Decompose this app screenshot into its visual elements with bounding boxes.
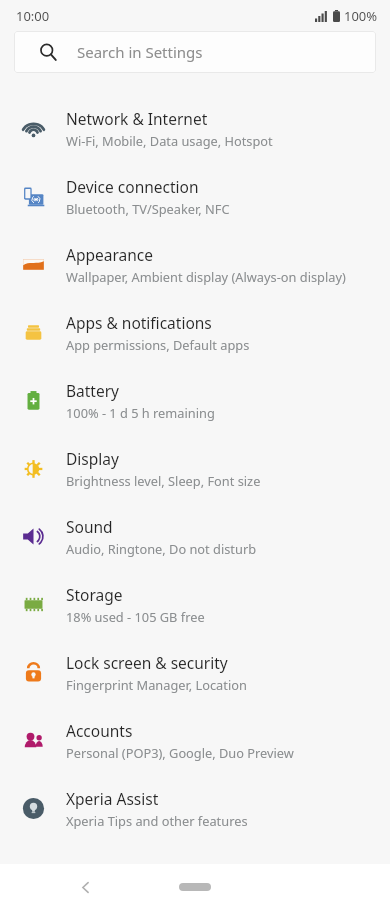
staticText: 100% <box>344 7 378 25</box>
staticText: Sound <box>66 516 113 537</box>
button[interactable]: Battery <box>0 366 390 434</box>
staticText: 100% - 1 d 5 h remaining <box>66 404 215 421</box>
staticText: Battery <box>66 380 120 401</box>
staticText: Accounts <box>66 720 133 741</box>
button[interactable]: Search in Settings <box>14 31 376 73</box>
staticText: App permissions, Default apps <box>66 336 250 353</box>
staticText: Audio, Ringtone, Do not disturb <box>66 540 257 557</box>
staticText: Personal (POP3), Google, Duo Preview <box>66 744 294 761</box>
button[interactable]: Lock screen & security <box>0 638 390 706</box>
staticText: Storage <box>66 584 123 605</box>
staticText: Display <box>66 448 119 469</box>
staticText: Lock screen & security <box>66 652 228 673</box>
staticText: Network & Internet <box>66 108 208 129</box>
button[interactable]: Appearance <box>0 230 390 298</box>
button[interactable]: Sound <box>0 502 390 570</box>
staticText: Appearance <box>66 244 153 265</box>
staticText: Fingerprint Manager, Location <box>66 676 247 693</box>
button[interactable]: Display <box>0 434 390 502</box>
button[interactable]: Home <box>172 874 218 900</box>
button[interactable]: Back <box>69 871 101 903</box>
staticText: 18% used - 105 GB free <box>66 608 205 625</box>
button[interactable]: Accounts <box>0 706 390 774</box>
button[interactable]: Xperia Assist <box>0 774 390 842</box>
staticText: 10:00 <box>16 7 50 25</box>
button[interactable]: Device connection <box>0 162 390 230</box>
button[interactable]: Storage <box>0 570 390 638</box>
staticText: Xperia Tips and other features <box>66 812 248 829</box>
staticText: Bluetooth, TV/Speaker, NFC <box>66 200 230 217</box>
staticText: Apps & notifications <box>66 312 212 333</box>
button[interactable]: Apps & notifications <box>0 298 390 366</box>
staticText: Brightness level, Sleep, Font size <box>66 472 261 489</box>
staticText: Search in Settings <box>77 42 203 62</box>
staticText: Xperia Assist <box>66 788 159 809</box>
staticText: Wi-Fi, Mobile, Data usage, Hotspot <box>66 132 273 149</box>
staticText: Wallpaper, Ambient display (Always-on di… <box>66 268 346 285</box>
button[interactable]: Network & Internet <box>0 94 390 162</box>
staticText: Device connection <box>66 176 199 197</box>
